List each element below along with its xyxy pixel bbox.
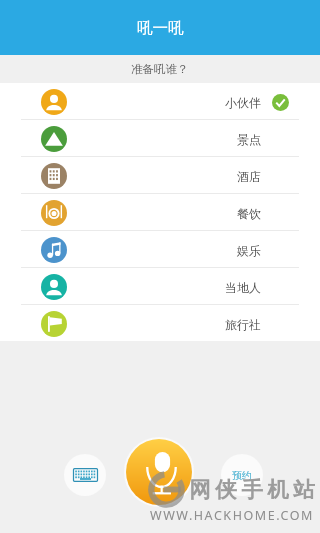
staticText: 网侠手机站 <box>187 476 317 503</box>
button[interactable]: 娱乐 <box>0 231 320 267</box>
button[interactable]: 预约 <box>221 454 263 496</box>
button[interactable]: 景点 <box>0 120 320 156</box>
staticText: 吼一吼 <box>137 18 184 38</box>
button[interactable]: 旅行社 <box>0 305 320 341</box>
staticText: 酒店 <box>237 169 261 184</box>
button[interactable]: Record voice message <box>126 439 192 505</box>
staticText: 当地人 <box>225 280 261 295</box>
button[interactable]: 酒店 <box>0 157 320 193</box>
staticText: 景点 <box>237 132 261 147</box>
button[interactable]: Keyboard input <box>64 454 106 496</box>
staticText: 小伙伴 <box>225 95 261 110</box>
button[interactable]: 餐饮 <box>0 194 320 230</box>
staticText: 预约 <box>232 469 252 482</box>
button[interactable]: 当地人 <box>0 268 320 304</box>
button[interactable]: 小伙伴 <box>0 83 320 119</box>
staticText: 旅行社 <box>225 317 261 332</box>
staticText: 娱乐 <box>237 243 261 258</box>
staticText: WWW.HACKHOME.COM <box>150 507 314 524</box>
staticText: 餐饮 <box>237 206 261 221</box>
staticText: 准备吼谁？ <box>131 62 189 76</box>
